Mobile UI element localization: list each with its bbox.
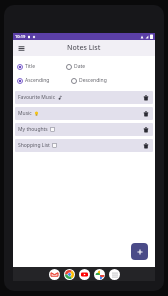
staticText: Favourite Music xyxy=(18,94,56,101)
button[interactable]: Gmail xyxy=(49,269,60,280)
button[interactable]: Date xyxy=(65,62,87,71)
staticText: Date xyxy=(74,63,86,70)
button[interactable]: Add note xyxy=(131,243,148,260)
staticText: 10:19 xyxy=(15,34,26,39)
button[interactable]: Favourite Music xyxy=(15,91,153,104)
staticText: Title xyxy=(25,63,35,70)
button[interactable]: Photos xyxy=(94,269,105,280)
staticText: Shopping List xyxy=(18,142,50,149)
button[interactable]: YouTube xyxy=(79,269,90,280)
button[interactable]: Delete note xyxy=(141,93,150,102)
button[interactable]: Title xyxy=(16,62,36,71)
button[interactable]: Delete note xyxy=(141,109,150,118)
button[interactable]: Delete note xyxy=(141,125,150,134)
staticText: Ascending xyxy=(25,77,50,84)
button[interactable]: Chrome xyxy=(64,269,75,280)
button[interactable]: All apps xyxy=(109,269,120,280)
staticText: Descending xyxy=(79,77,107,84)
staticText: Notes List xyxy=(67,43,101,53)
button[interactable]: Delete note xyxy=(141,141,150,150)
button[interactable]: Shopping List xyxy=(15,139,153,152)
button[interactable]: My thoughts xyxy=(15,123,153,136)
button[interactable]: Ascending xyxy=(16,76,51,85)
button[interactable]: Descending xyxy=(70,76,108,85)
button[interactable]: Music xyxy=(15,107,153,120)
staticText: My thoughts xyxy=(18,126,48,133)
button[interactable]: Open navigation menu xyxy=(15,42,27,54)
staticText: Music xyxy=(18,110,32,117)
